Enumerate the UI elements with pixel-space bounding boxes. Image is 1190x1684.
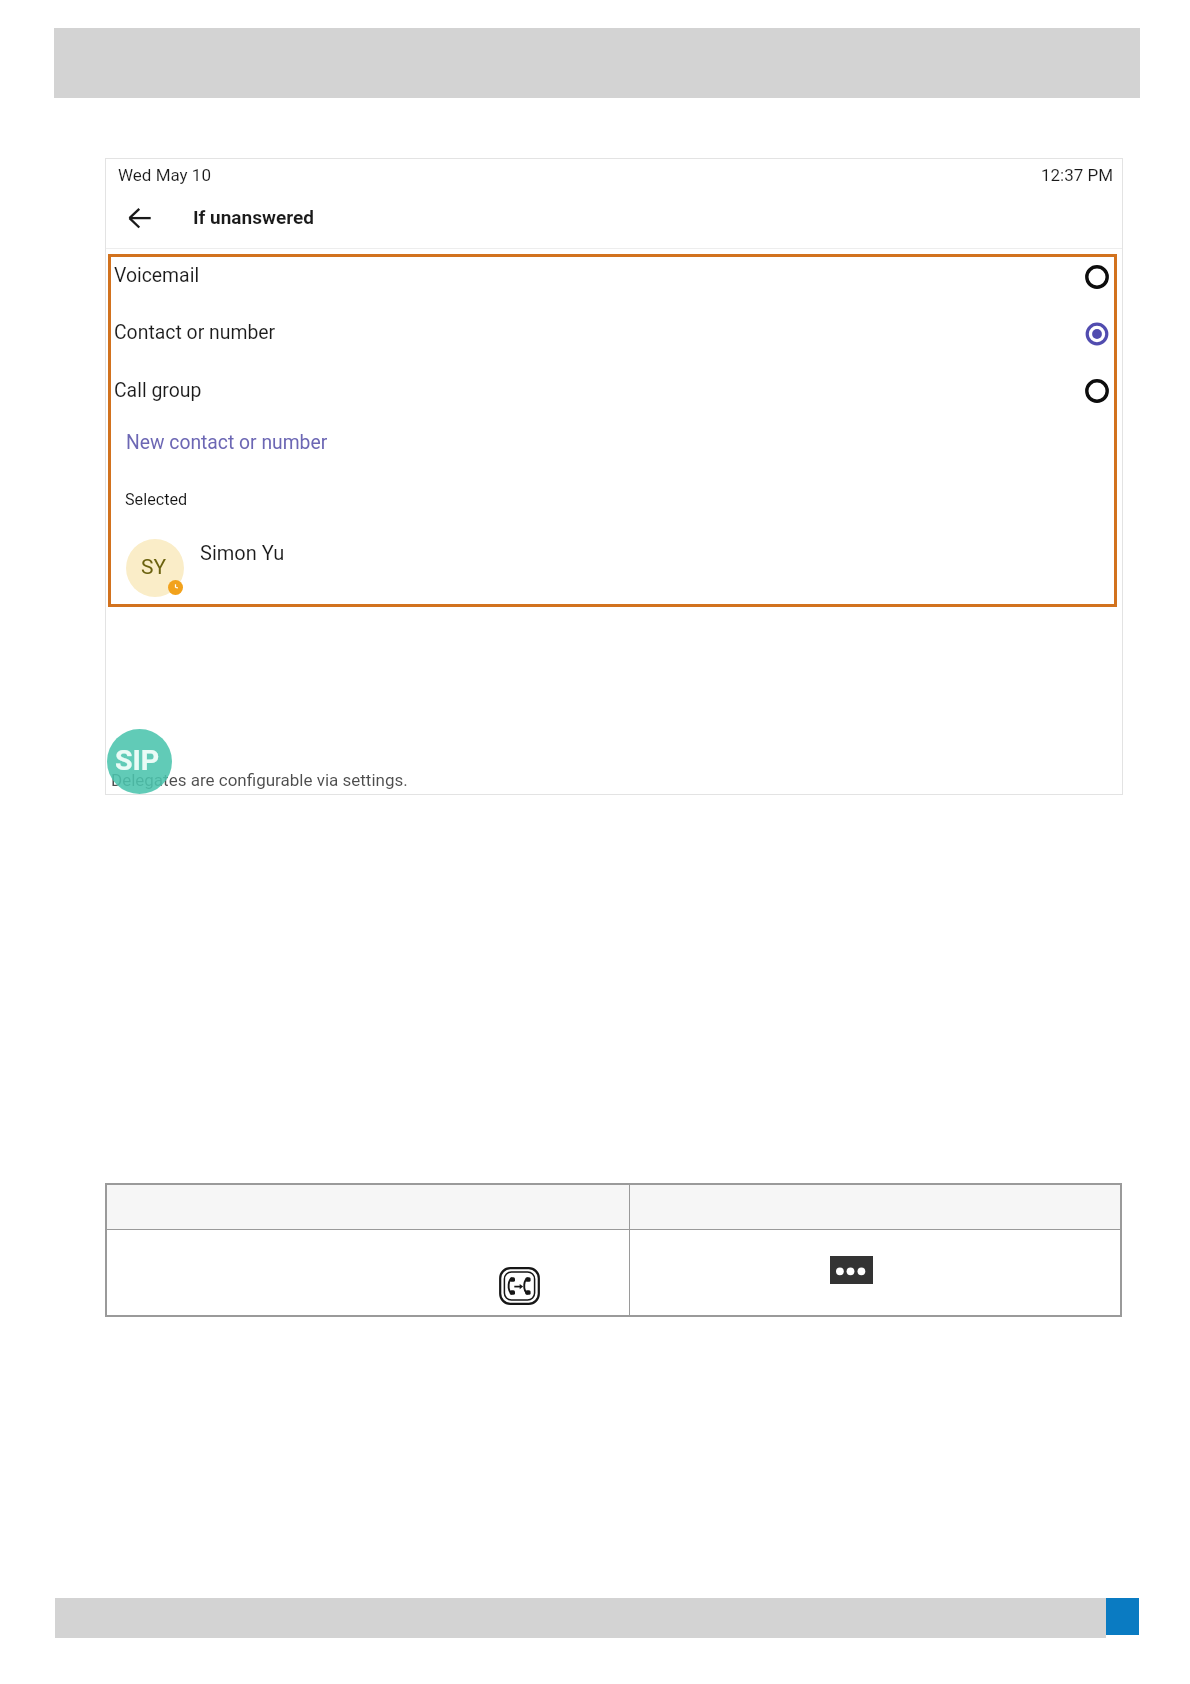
staticText: Simon Yu [200, 541, 285, 564]
staticText: Wed May 10 [118, 165, 211, 185]
button[interactable]: Call group [111, 362, 1115, 419]
staticText: Contact or number [114, 321, 276, 344]
other: Transfer call key [499, 1267, 540, 1305]
button[interactable]: Back [122, 200, 158, 236]
button[interactable]: SY [111, 528, 1115, 602]
staticText: Selected [125, 490, 188, 509]
staticText: Voicemail [114, 264, 200, 287]
button[interactable]: Voicemail [111, 249, 1115, 305]
staticText: Call group [114, 379, 202, 402]
staticText: If unanswered [193, 206, 314, 228]
other: More options key [830, 1256, 873, 1284]
staticText: New contact or number [126, 431, 328, 454]
staticText: Delegates are configurable via settings. [111, 770, 408, 790]
staticText: 12:37 PM [1041, 165, 1114, 185]
staticText: SY [141, 555, 167, 580]
button[interactable]: New contact or number [111, 419, 1115, 470]
button[interactable]: Contact or number [111, 305, 1115, 362]
staticText: SIP [115, 744, 160, 777]
